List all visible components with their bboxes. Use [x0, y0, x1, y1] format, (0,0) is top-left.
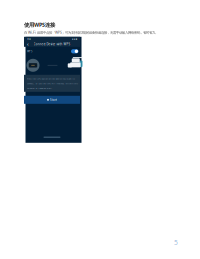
staticText: Connect Device with WPS	[33, 42, 70, 46]
button[interactable]: WPS toggle	[71, 49, 78, 53]
staticText: 使用WPS连接	[24, 21, 55, 28]
staticText: Press the WPS button on the device you w…	[26, 77, 74, 80]
button[interactable]: Start	[24, 96, 80, 104]
staticText: 9:41	[27, 37, 31, 41]
staticText: ▪ ▪ ▮	[72, 38, 77, 40]
staticText: minutes of tapping Start.	[26, 86, 52, 90]
staticText: 5	[174, 238, 178, 247]
button[interactable]: Back	[25, 41, 30, 47]
staticText: WPS	[27, 50, 32, 53]
staticText: ‹	[27, 40, 29, 48]
staticText: connect, or use the WPS PIN method, with…	[26, 82, 77, 85]
staticText: Start	[50, 98, 57, 102]
staticText: 在 Wi-Fi 设置中点按「WPS」可为支持该功能的设备快速连接，无需手动输入网…	[24, 30, 158, 35]
